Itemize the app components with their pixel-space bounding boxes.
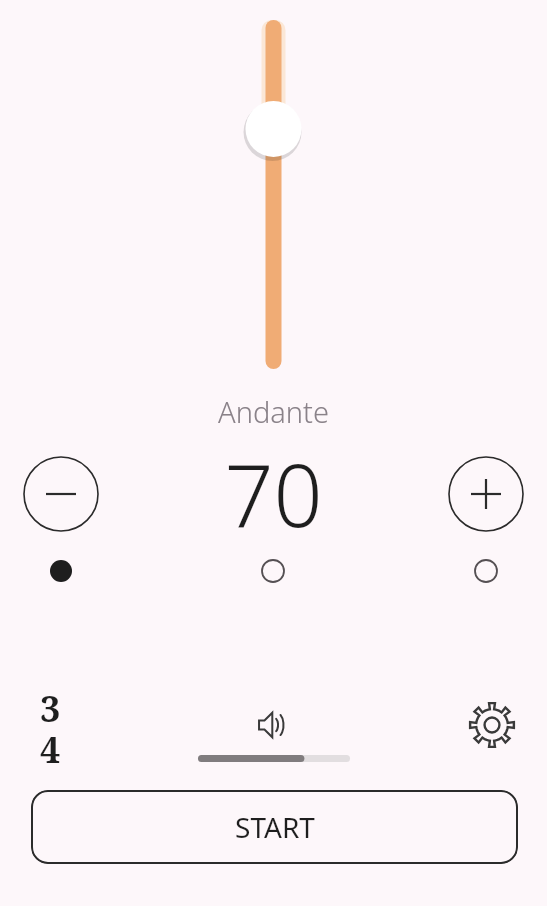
staticText: START	[235, 808, 315, 846]
button[interactable]: Tempo slider	[0, 0, 547, 390]
staticText: Andante	[218, 392, 329, 431]
button[interactable]: Beat	[235, 556, 311, 586]
button[interactable]: Beat	[448, 556, 524, 586]
staticText: 70	[224, 435, 323, 552]
button[interactable]: 3	[40, 684, 61, 780]
button[interactable]: Sound	[251, 702, 297, 748]
button[interactable]: Volume	[198, 750, 350, 766]
button[interactable]: Decrease tempo	[23, 456, 99, 532]
button[interactable]: Beat 1 accent	[23, 556, 99, 586]
staticText: 3	[40, 684, 61, 733]
button[interactable]: Increase tempo	[448, 456, 524, 532]
staticText: 4	[40, 725, 61, 772]
button[interactable]: START	[31, 790, 518, 864]
button[interactable]: Settings	[463, 696, 521, 754]
